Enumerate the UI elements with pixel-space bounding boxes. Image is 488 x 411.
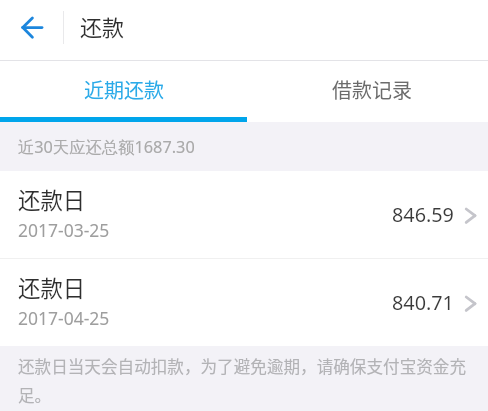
staticText: 846.59 (392, 201, 454, 228)
staticText: 2017-03-25 (18, 218, 110, 242)
staticText: 还款日当天会自动扣款，为了避免逾期，请确保支付宝资金充足。 (18, 354, 471, 407)
staticText: 2017-04-25 (18, 306, 110, 330)
button[interactable]: 还款日 (0, 171, 488, 258)
button[interactable]: 近期还款 (0, 61, 247, 122)
button[interactable]: 还款日 (0, 259, 488, 346)
staticText: 近期还款 (84, 75, 164, 104)
staticText: 还款日 (18, 271, 86, 303)
staticText: 还款 (80, 10, 125, 42)
staticText: 还款日 (18, 183, 86, 215)
button[interactable]: 借款记录 (247, 61, 488, 122)
staticText: 840.71 (392, 289, 454, 316)
button[interactable]: Back (0, 0, 63, 60)
staticText: 近30天应还总额1687.30 (18, 136, 195, 158)
staticText: 借款记录 (332, 75, 412, 104)
